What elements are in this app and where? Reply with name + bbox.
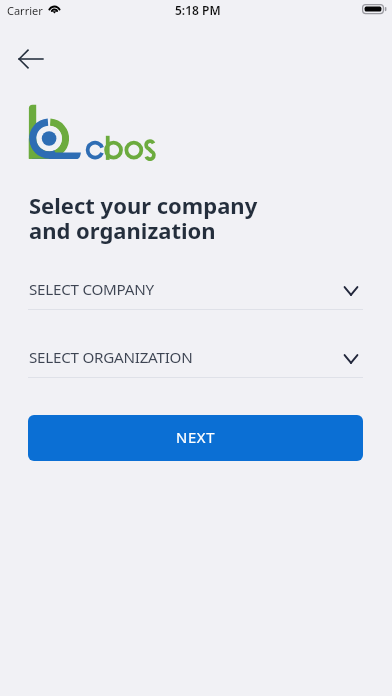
staticText: NEXT [176, 427, 216, 447]
staticText: Select your company and organization [29, 190, 258, 246]
button[interactable]: Back [9, 37, 53, 81]
button[interactable]: SELECT COMPANY [28, 275, 363, 309]
staticText: 5:18 PM [175, 2, 221, 18]
button[interactable]: NEXT [28, 415, 363, 461]
staticText: SELECT ORGANIZATION [29, 347, 193, 368]
button[interactable]: SELECT ORGANIZATION [28, 343, 363, 377]
staticText: Carrier [7, 3, 43, 18]
staticText: SELECT COMPANY [29, 279, 154, 300]
